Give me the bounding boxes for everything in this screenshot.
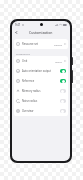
staticText: Reference — [22, 79, 35, 83]
button[interactable]: Memory radius — [14, 86, 68, 96]
button[interactable]: Noise radius — [14, 96, 68, 106]
staticText: Memory radius — [22, 89, 41, 93]
button[interactable]: Overview — [14, 106, 68, 116]
staticText: Preferences — [16, 52, 30, 55]
button[interactable]: Off — [60, 109, 66, 113]
button[interactable]: Auto orientation output graphics — [14, 66, 68, 76]
button[interactable]: Back — [13, 29, 20, 36]
button[interactable]: On — [60, 79, 66, 83]
button[interactable]: Off — [60, 89, 66, 93]
button[interactable]: On — [60, 69, 66, 73]
button[interactable]: Reference — [14, 76, 68, 86]
button[interactable]: Unit — [14, 56, 68, 66]
staticText: Customization — [29, 30, 53, 35]
staticText: Metric — [55, 60, 63, 63]
staticText: Overview — [22, 109, 34, 113]
staticText: Auto orientation output graphics — [22, 69, 59, 73]
button[interactable]: Resource set — [14, 39, 68, 49]
staticText: Noise radius — [22, 99, 38, 103]
staticText: 9:41 — [15, 23, 21, 27]
staticText: Resource set — [22, 42, 39, 46]
staticText: Default — [54, 43, 63, 46]
button[interactable]: Off — [60, 99, 66, 103]
staticText: Unit — [22, 59, 28, 63]
